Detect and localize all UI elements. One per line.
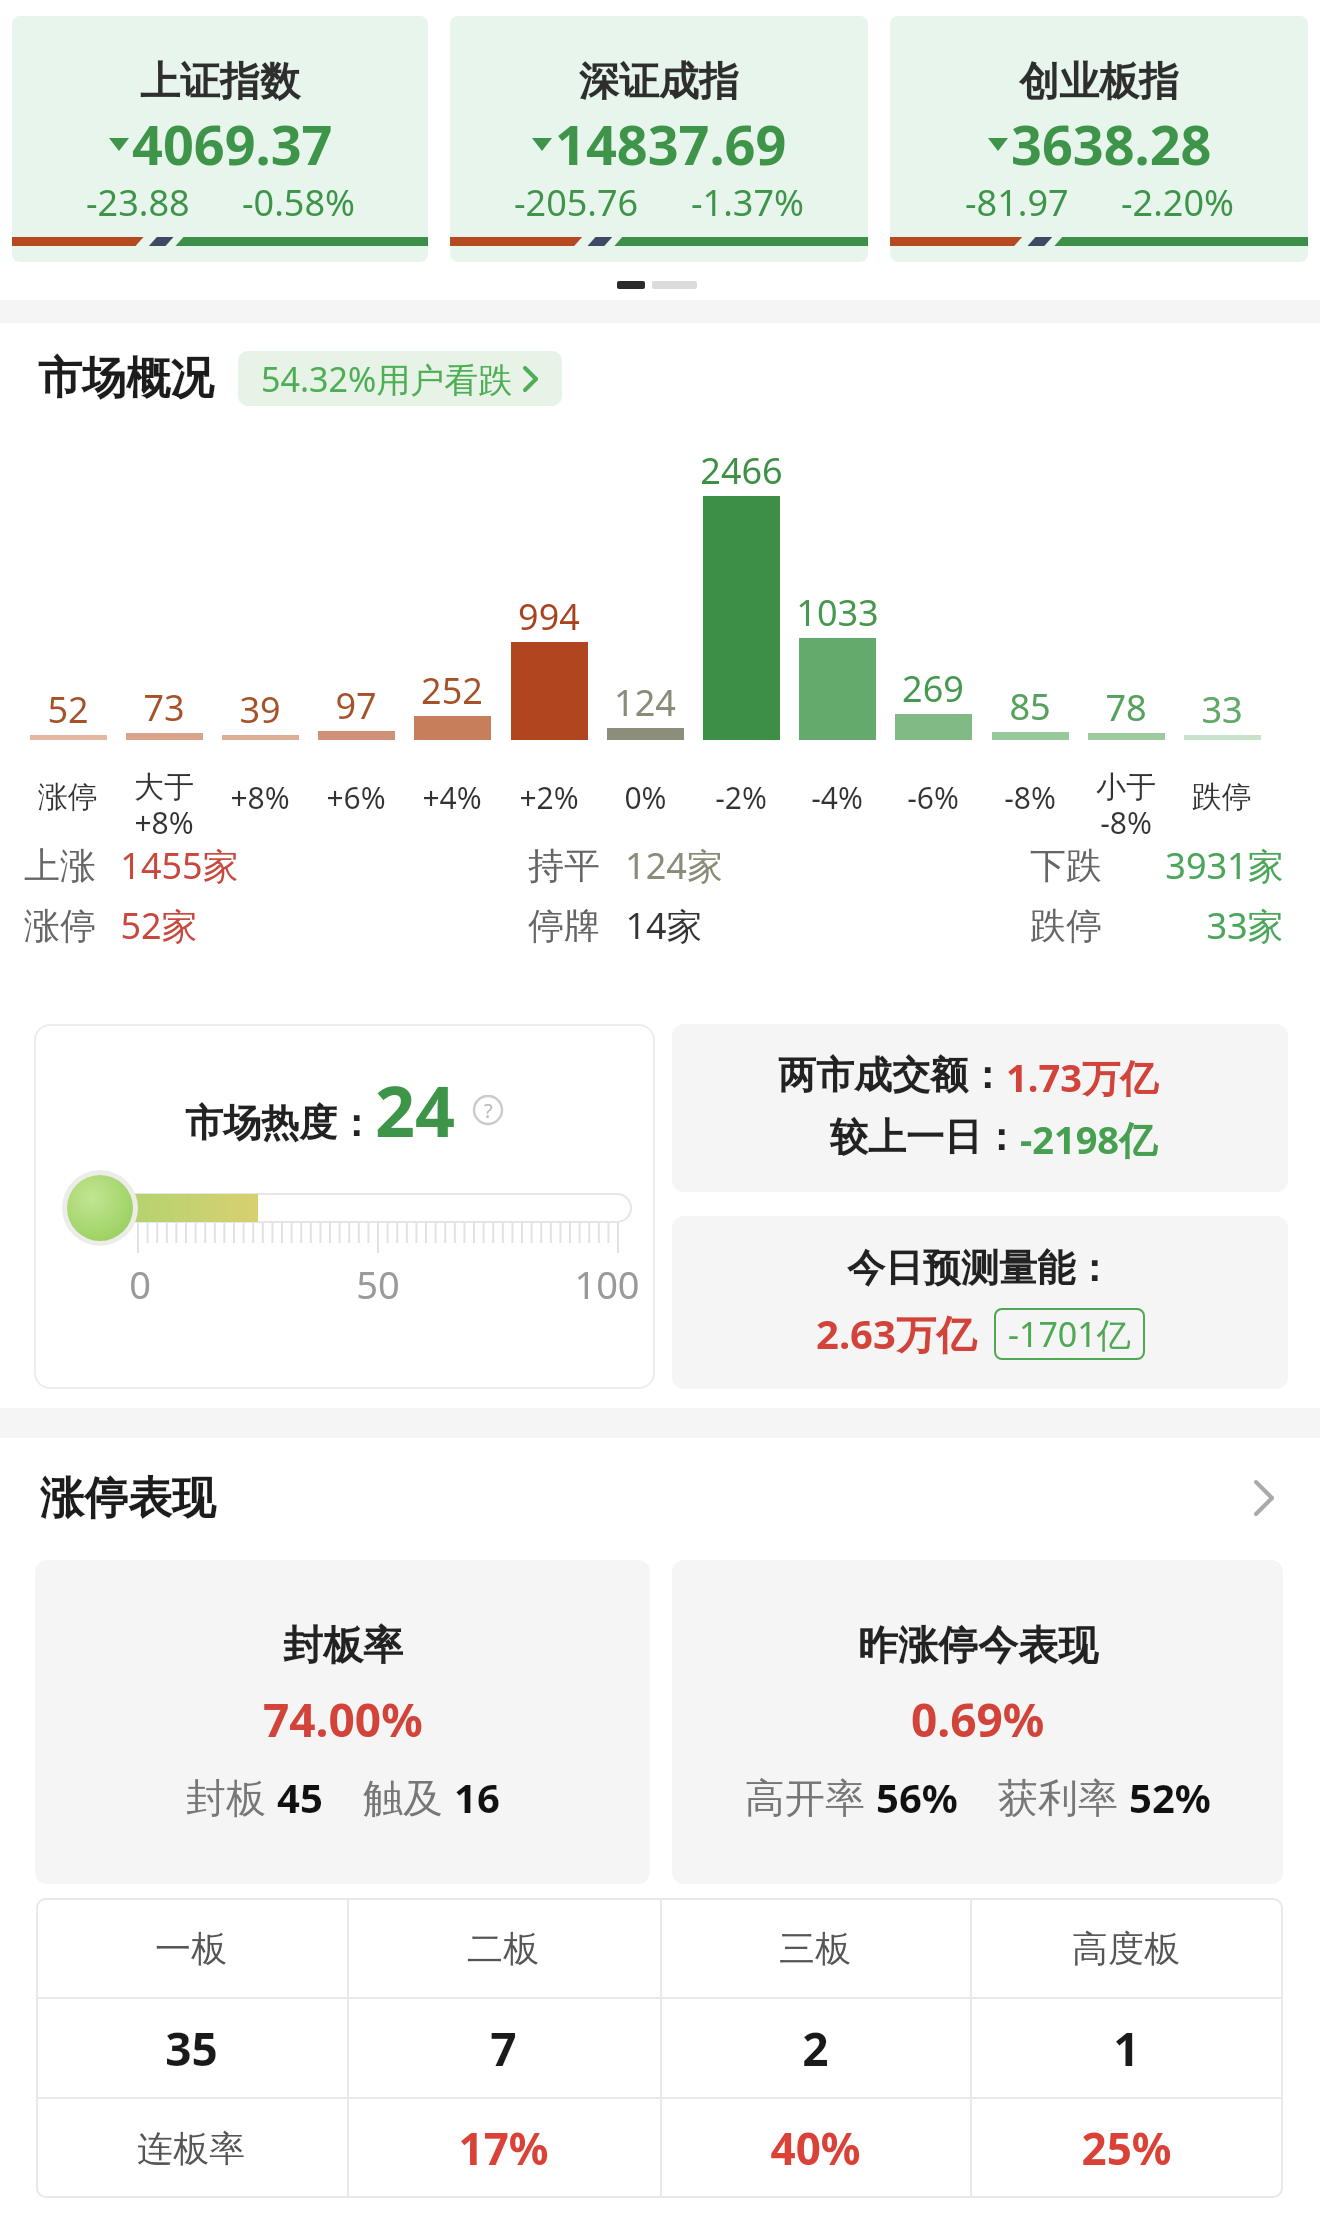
staticText: -2198亿: [1020, 1113, 1158, 1165]
staticText: 52: [47, 685, 89, 734]
staticText: 50: [356, 1258, 400, 1310]
staticText: -4%: [811, 777, 863, 818]
staticText: 35: [165, 2017, 218, 2080]
button[interactable]: 一板: [36, 1898, 1283, 2198]
staticText: +4%: [422, 777, 482, 818]
staticText: 4069.37: [132, 107, 333, 181]
button[interactable]: 上证指数: [12, 16, 428, 262]
staticText: 停牌: [528, 903, 600, 948]
staticText: 2466: [700, 446, 783, 495]
staticText: -205.76: [514, 178, 639, 227]
staticText: +8%: [230, 777, 290, 818]
button[interactable]: 创业板指: [890, 16, 1308, 262]
staticText: 994: [518, 592, 580, 641]
staticText: ?: [484, 1097, 493, 1124]
staticText: 较上一日：: [830, 1113, 1020, 1161]
staticText: 上证指数: [140, 56, 300, 106]
staticText: 跌停: [1192, 778, 1252, 816]
staticText: 创业板指: [1019, 56, 1179, 106]
staticText: 17%: [458, 2118, 549, 2178]
staticText: 1.73万亿: [1006, 1051, 1158, 1103]
staticText: 74.00%: [263, 1688, 423, 1751]
staticText: 252: [421, 666, 483, 715]
staticText: 124: [614, 678, 676, 727]
staticText: 3931家: [1165, 841, 1284, 890]
staticText: 连板率: [137, 2126, 245, 2171]
staticText: 269: [902, 664, 964, 713]
staticText: 2.63万亿: [816, 1306, 976, 1361]
staticText: 1033: [796, 588, 879, 637]
staticText: 一板: [155, 1926, 227, 1971]
staticText: 涨停: [24, 903, 96, 948]
button[interactable]: 今日预测量能：: [672, 1216, 1288, 1389]
staticText: -23.88: [86, 178, 190, 227]
staticText: 0: [129, 1258, 151, 1310]
staticText: -6%: [907, 777, 959, 818]
staticText: 0.69%: [911, 1688, 1045, 1751]
staticText: 涨停: [38, 778, 98, 816]
staticText: +6%: [326, 777, 386, 818]
staticText: 14837.69: [555, 107, 787, 181]
staticText: 45: [277, 1770, 323, 1824]
staticText: 触及: [363, 1769, 454, 1824]
staticText: 高度板: [1072, 1926, 1180, 1971]
staticText: 三板: [779, 1926, 851, 1971]
staticText: 100: [574, 1258, 640, 1310]
button[interactable]: ?: [472, 1094, 504, 1126]
staticText: 二板: [467, 1926, 539, 1971]
staticText: 14家: [625, 901, 703, 950]
staticText: 持平: [528, 843, 600, 888]
staticText: 39: [239, 685, 281, 734]
button[interactable]: 54.32%用户看跌: [238, 351, 562, 406]
staticText: 深证成指: [579, 56, 739, 106]
staticText: 两市成交额：: [778, 1051, 1006, 1099]
staticText: 78: [1105, 683, 1147, 732]
staticText: 40%: [770, 2118, 861, 2178]
staticText: 封板: [186, 1769, 277, 1824]
staticText: 昨涨停今表现: [858, 1620, 1098, 1670]
staticText: 跌停: [1030, 903, 1102, 948]
staticText: 下跌: [1030, 843, 1102, 888]
button[interactable]: 市场热度：: [34, 1024, 655, 1389]
staticText: +2%: [519, 777, 579, 818]
staticText: 124家: [625, 841, 723, 890]
staticText: 今日预测量能：: [847, 1244, 1113, 1292]
staticText: 56%: [876, 1770, 958, 1824]
staticText: -2%: [715, 777, 767, 818]
staticText: -8%: [1004, 777, 1056, 818]
staticText: 97: [335, 681, 377, 730]
staticText: 24: [375, 1062, 456, 1157]
staticText: 1455家: [120, 841, 239, 890]
staticText: 16: [454, 1770, 500, 1824]
staticText: 获利率: [998, 1769, 1129, 1824]
staticText: 73: [143, 683, 185, 732]
staticText: 25%: [1081, 2118, 1172, 2178]
staticText: 小于 -8%: [1096, 768, 1156, 843]
staticText: 54.32%用户看跌: [261, 356, 513, 402]
staticText: 大于 +8%: [134, 768, 194, 843]
staticText: -1.37%: [691, 178, 804, 227]
staticText: 0%: [624, 777, 667, 818]
staticText: 高开率: [745, 1769, 876, 1824]
staticText: -1701亿: [1008, 1311, 1131, 1357]
staticText: 市场热度：: [185, 1099, 375, 1147]
button[interactable]: 两市成交额：: [672, 1024, 1288, 1192]
staticText: 1: [1113, 2017, 1140, 2080]
staticText: 涨停表现: [40, 1471, 216, 1526]
staticText: 上涨: [24, 843, 96, 888]
button[interactable]: 涨停表现: [0, 1468, 1320, 1528]
button[interactable]: 深证成指: [450, 16, 868, 262]
staticText: 7: [490, 2017, 517, 2080]
staticText: 33家: [1206, 901, 1284, 950]
staticText: -2.20%: [1121, 178, 1234, 227]
staticText: 85: [1009, 682, 1051, 731]
staticText: 封板率: [283, 1620, 403, 1670]
button[interactable]: 昨涨停今表现: [672, 1560, 1283, 1884]
staticText: -81.97: [965, 178, 1069, 227]
staticText: 52家: [120, 901, 198, 950]
staticText: 2: [802, 2017, 829, 2080]
staticText: 3638.28: [1011, 107, 1212, 181]
staticText: 市场概况: [38, 351, 214, 406]
button[interactable]: 封板率: [35, 1560, 650, 1884]
staticText: 52%: [1129, 1770, 1211, 1824]
